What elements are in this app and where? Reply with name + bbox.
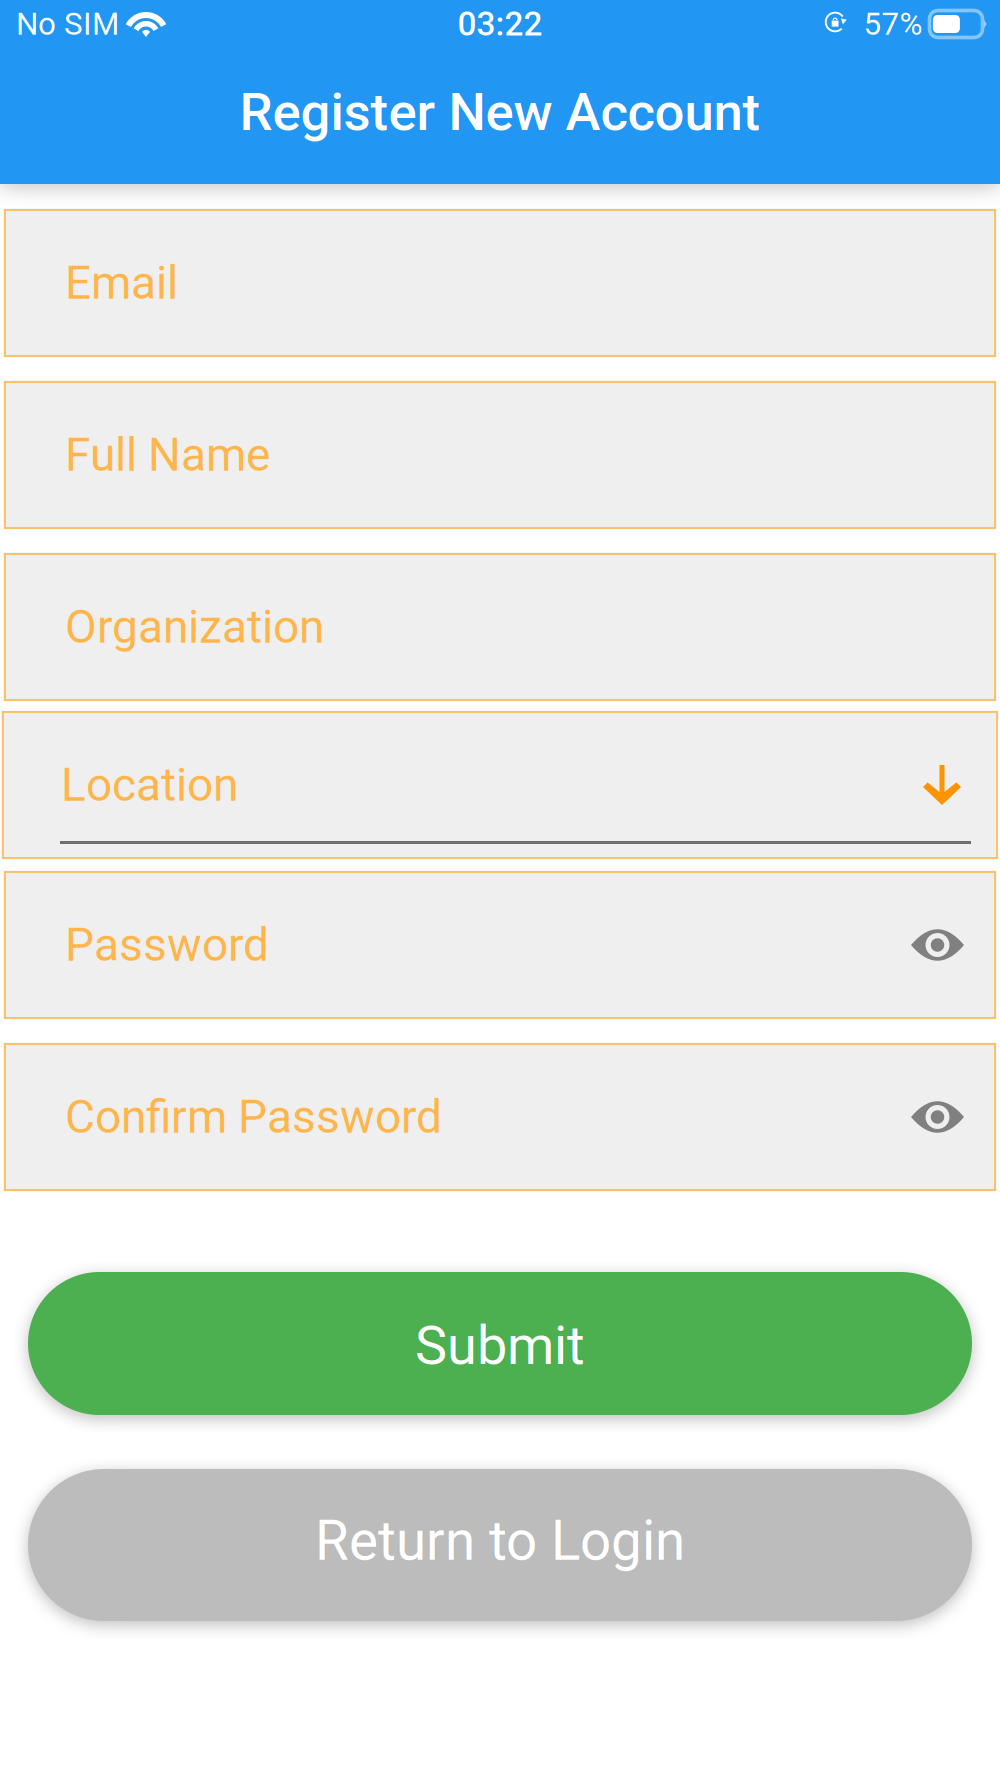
- staticText: Full Name: [65, 428, 270, 482]
- button[interactable]: Show confirm password: [911, 1098, 964, 1135]
- staticText: Register New Account: [239, 81, 760, 143]
- button[interactable]: Show password: [911, 926, 964, 963]
- button[interactable]: Confirm Password: [0, 1044, 1000, 1190]
- staticText: Location: [61, 758, 238, 812]
- staticText: Confirm Password: [65, 1090, 442, 1144]
- button[interactable]: Full Name: [0, 382, 1000, 528]
- staticText: No SIM: [16, 6, 119, 42]
- button[interactable]: Email: [0, 210, 1000, 356]
- button[interactable]: Location: [0, 712, 1000, 858]
- staticText: 03:22: [457, 4, 542, 44]
- button[interactable]: Organization: [0, 554, 1000, 700]
- staticText: Submit: [415, 1314, 585, 1377]
- button[interactable]: Return to Login: [28, 1469, 972, 1621]
- button[interactable]: Choose location: [923, 765, 961, 805]
- button[interactable]: Submit: [28, 1272, 972, 1415]
- staticText: 57%: [863, 6, 922, 42]
- staticText: Return to Login: [315, 1509, 685, 1573]
- button[interactable]: Password: [0, 872, 1000, 1018]
- staticText: Password: [65, 918, 269, 972]
- staticText: Email: [65, 256, 178, 310]
- staticText: Organization: [65, 600, 324, 654]
